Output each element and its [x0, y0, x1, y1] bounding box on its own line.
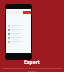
- staticText: Lorem ipsum dolor sit amet consectetur a…: [2, 66, 62, 72]
- button[interactable]: [6, 24, 31, 28]
- staticText: Expert: [24, 59, 40, 66]
- button[interactable]: [6, 36, 31, 40]
- button[interactable]: [6, 28, 31, 32]
- button[interactable]: [6, 32, 31, 36]
- button[interactable]: [6, 40, 31, 44]
